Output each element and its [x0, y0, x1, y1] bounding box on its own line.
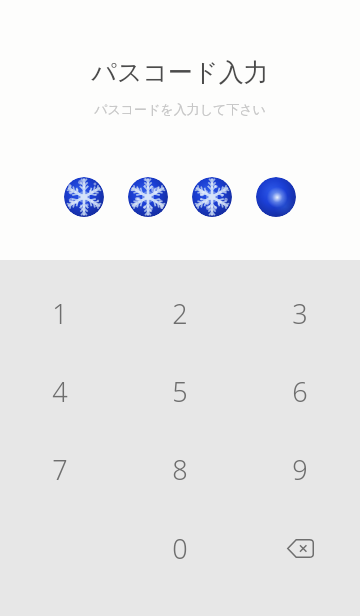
- button[interactable]: 7: [0, 430, 120, 509]
- staticText: パスコード入力: [0, 57, 360, 88]
- staticText: 8: [172, 451, 188, 488]
- staticText: 3: [292, 295, 308, 332]
- button[interactable]: 9: [240, 430, 360, 509]
- staticText: 0: [172, 530, 188, 567]
- staticText: 9: [292, 451, 308, 488]
- button[interactable]: 0: [120, 509, 240, 588]
- button[interactable]: 2: [120, 274, 240, 352]
- staticText: 5: [172, 373, 188, 410]
- staticText: 6: [292, 373, 308, 410]
- staticText: 1: [52, 295, 68, 332]
- button[interactable]: 8: [120, 430, 240, 509]
- staticText: 4: [52, 373, 68, 410]
- staticText: 7: [52, 451, 68, 488]
- button[interactable]: 5: [120, 352, 240, 430]
- button[interactable]: 3: [240, 274, 360, 352]
- button[interactable]: 1: [0, 274, 120, 352]
- button[interactable]: 6: [240, 352, 360, 430]
- staticText: 2: [172, 295, 188, 332]
- button[interactable]: 4: [0, 352, 120, 430]
- button[interactable]: Backspace: [240, 509, 360, 588]
- staticText: パスコードを入力して下さい: [0, 101, 360, 117]
